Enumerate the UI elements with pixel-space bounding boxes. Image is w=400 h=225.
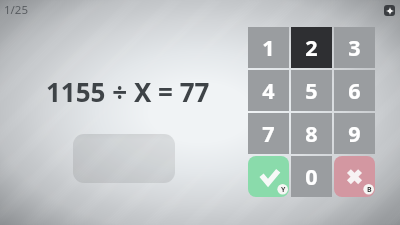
- staticText: 1/25: [4, 2, 29, 18]
- button[interactable]: Answer field: [73, 134, 175, 183]
- button[interactable]: 6: [334, 70, 375, 111]
- staticText: 6: [348, 76, 361, 105]
- button[interactable]: 1: [248, 27, 289, 68]
- button[interactable]: Add: [384, 5, 395, 16]
- staticText: 1: [262, 33, 275, 62]
- button[interactable]: Clear: [334, 156, 375, 197]
- staticText: 9: [348, 119, 361, 148]
- button[interactable]: 4: [248, 70, 289, 111]
- staticText: 8: [305, 119, 318, 148]
- staticText: 3: [348, 33, 361, 62]
- staticText: 5: [305, 76, 318, 105]
- button[interactable]: 2: [291, 27, 332, 68]
- staticText: 2: [305, 33, 318, 62]
- staticText: B: [367, 185, 372, 195]
- button[interactable]: 3: [334, 27, 375, 68]
- staticText: Y: [281, 185, 286, 195]
- button[interactable]: 0: [291, 156, 332, 197]
- button[interactable]: 5: [291, 70, 332, 111]
- button[interactable]: 8: [291, 113, 332, 154]
- staticText: 1155 ÷ X = 77: [46, 74, 210, 109]
- staticText: 0: [305, 162, 318, 191]
- staticText: 4: [262, 76, 275, 105]
- button[interactable]: 9: [334, 113, 375, 154]
- button[interactable]: 7: [248, 113, 289, 154]
- staticText: 7: [262, 119, 275, 148]
- button[interactable]: Submit answer: [248, 156, 289, 197]
